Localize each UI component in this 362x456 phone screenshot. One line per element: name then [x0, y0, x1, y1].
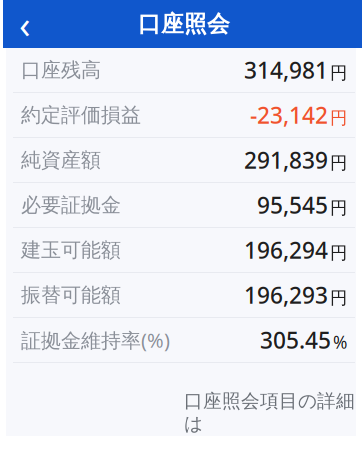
- staticText: 円: [330, 62, 347, 84]
- staticText: -23,142: [250, 100, 328, 130]
- button[interactable]: 口座照会項目の詳細は: [184, 377, 359, 448]
- staticText: 95,545: [257, 190, 328, 220]
- staticText: 口座残高: [21, 58, 101, 82]
- staticText: 口座照会項目の詳細は: [184, 389, 355, 435]
- staticText: 必要証拠金: [21, 193, 121, 217]
- staticText: %: [333, 331, 347, 354]
- staticText: 円: [330, 197, 347, 219]
- staticText: 約定評価損益: [21, 103, 141, 127]
- staticText: 建玉可能額: [21, 238, 121, 262]
- staticText: 円: [330, 287, 347, 309]
- staticText: 口座照会: [138, 10, 230, 38]
- staticText: 純資産額: [21, 148, 101, 172]
- staticText: 円: [330, 242, 347, 264]
- staticText: 証拠金維持率(%): [21, 327, 170, 353]
- button[interactable]: Back: [3, 0, 47, 48]
- staticText: 305.45: [260, 325, 331, 355]
- staticText: 円: [330, 107, 347, 129]
- staticText: 196,293: [244, 280, 328, 310]
- staticText: 314,981: [244, 55, 328, 85]
- staticText: 196,294: [244, 235, 328, 265]
- staticText: 円: [330, 152, 347, 174]
- staticText: 291,839: [244, 145, 328, 175]
- staticText: 振替可能額: [21, 283, 121, 307]
- staticText: ‹: [19, 0, 31, 49]
